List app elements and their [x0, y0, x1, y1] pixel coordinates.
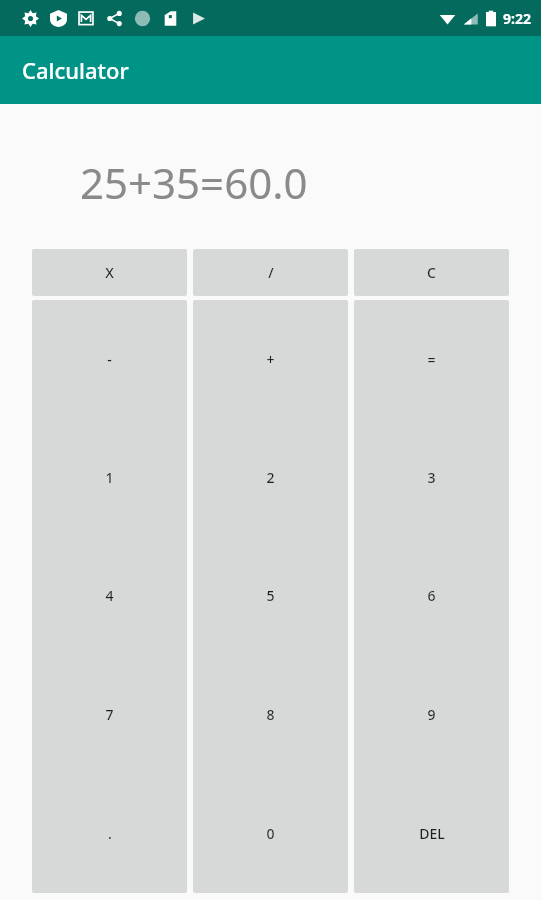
staticText: C: [427, 263, 436, 282]
staticText: 5: [266, 586, 275, 605]
button[interactable]: 1: [32, 418, 187, 536]
button[interactable]: /: [193, 249, 348, 296]
staticText: .: [108, 824, 112, 843]
button[interactable]: C: [354, 249, 509, 296]
button[interactable]: 3: [354, 418, 509, 536]
button[interactable]: 7: [32, 655, 187, 774]
staticText: Calculator: [22, 55, 129, 85]
button[interactable]: 0: [193, 774, 348, 893]
button[interactable]: 4: [32, 536, 187, 655]
staticText: 4: [105, 586, 114, 605]
button[interactable]: 2: [193, 418, 348, 536]
button[interactable]: X: [32, 249, 187, 296]
staticText: 9: [427, 705, 436, 724]
staticText: 7: [105, 705, 114, 724]
staticText: +: [266, 350, 275, 369]
button[interactable]: =: [354, 300, 509, 418]
button[interactable]: +: [193, 300, 348, 418]
button[interactable]: 9: [354, 655, 509, 774]
staticText: 6: [427, 586, 436, 605]
staticText: X: [105, 263, 114, 282]
staticText: 9:22: [503, 9, 531, 28]
staticText: 2: [266, 468, 275, 487]
staticText: =: [427, 350, 436, 369]
button[interactable]: 6: [354, 536, 509, 655]
staticText: /: [268, 263, 274, 282]
button[interactable]: 8: [193, 655, 348, 774]
staticText: -: [107, 350, 112, 369]
staticText: 1: [105, 468, 114, 487]
staticText: 8: [266, 705, 275, 724]
button[interactable]: 5: [193, 536, 348, 655]
staticText: 0: [266, 824, 275, 843]
staticText: DEL: [419, 824, 445, 843]
button[interactable]: DEL: [354, 774, 509, 893]
staticText: 3: [427, 468, 436, 487]
staticText: 25+35=60.0: [80, 154, 308, 211]
